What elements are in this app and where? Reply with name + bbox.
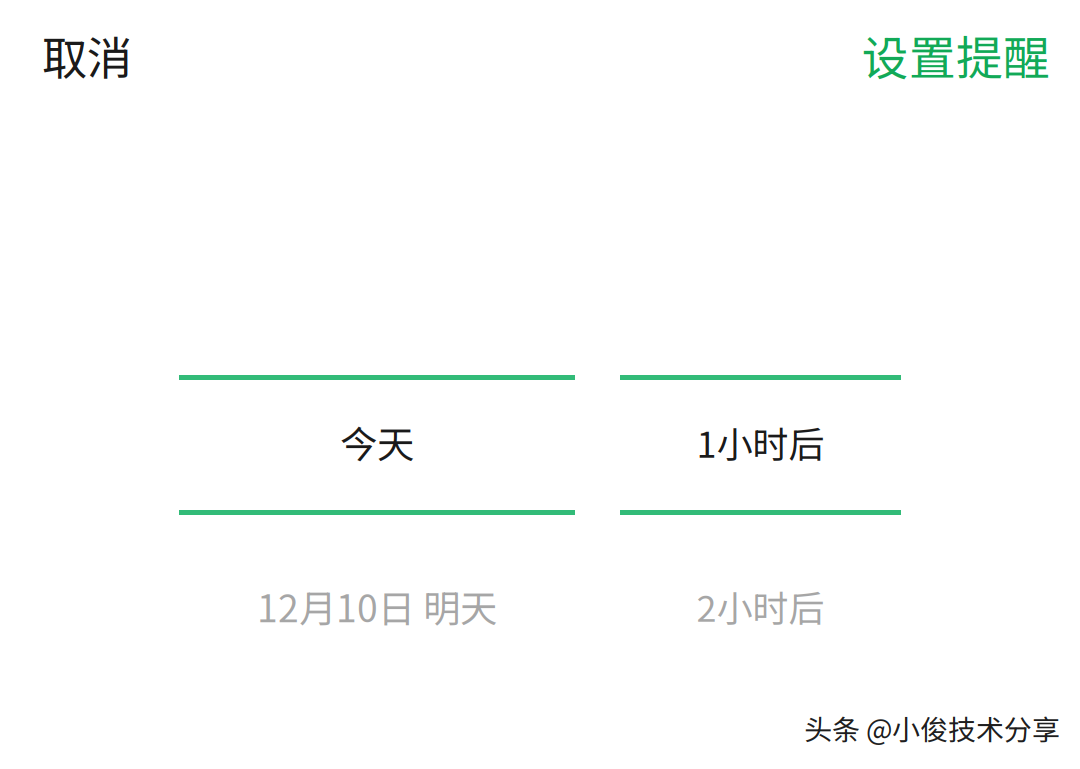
button[interactable]: 设置提醒 [826, 3, 1080, 107]
staticText: 2小时后 [696, 580, 824, 632]
button[interactable]: 取消 [0, 3, 187, 107]
staticText: 12月10日 明天 [257, 579, 497, 633]
button[interactable]: 今天 [179, 377, 575, 507]
button[interactable]: 12月10日 明天 [179, 541, 575, 671]
staticText: 今天 [340, 415, 414, 469]
button[interactable]: 2小时后 [620, 541, 901, 671]
staticText: 取消 [42, 22, 132, 88]
staticText: 设置提醒 [862, 21, 1050, 89]
staticText: 头条 @小俊技术分享 [804, 708, 1060, 748]
button[interactable]: 1小时后 [620, 377, 901, 507]
staticText: 1小时后 [696, 416, 824, 468]
